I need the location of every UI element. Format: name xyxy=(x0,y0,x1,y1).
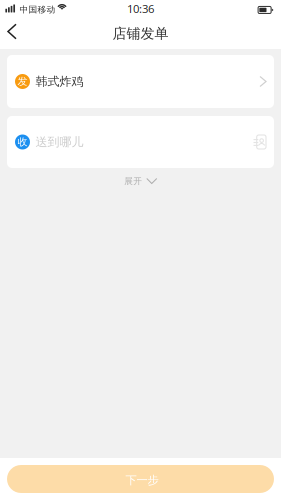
button[interactable]: 收 xyxy=(7,116,274,168)
button[interactable]: 下一步 xyxy=(7,465,274,493)
staticText: 中国移动 xyxy=(20,4,56,15)
staticText: 韩式炸鸡 xyxy=(35,74,83,89)
button[interactable]: 展开 xyxy=(105,170,175,192)
staticText: 店铺发单 xyxy=(112,25,168,42)
staticText: 下一步 xyxy=(125,473,158,487)
staticText: 收 xyxy=(17,136,27,148)
staticText: 展开 xyxy=(124,175,142,186)
staticText: 10:36 xyxy=(127,1,154,16)
staticText: 发 xyxy=(17,75,27,88)
staticText: 送到哪儿 xyxy=(35,134,83,149)
button[interactable]: Back xyxy=(0,20,28,49)
button[interactable]: 发 xyxy=(7,55,274,108)
